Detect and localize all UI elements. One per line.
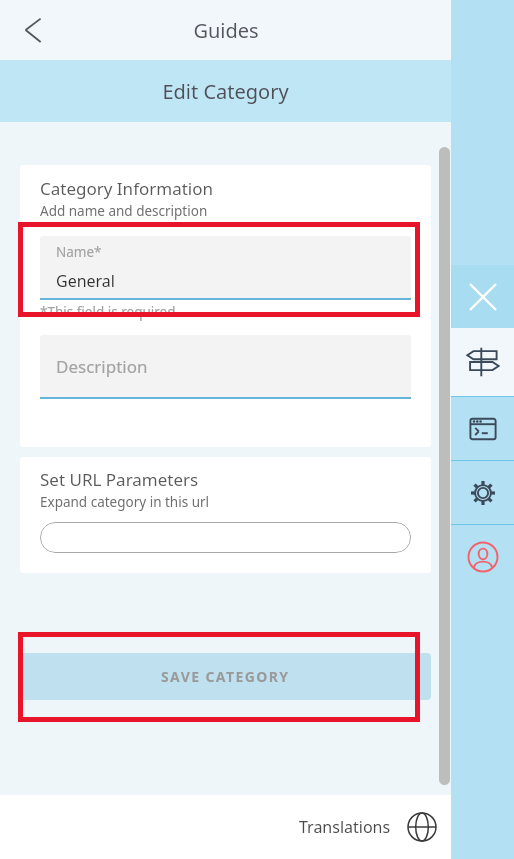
staticText: Translations — [299, 816, 391, 838]
button[interactable]: Description — [40, 335, 411, 399]
staticText: Expand category in this url — [40, 493, 210, 511]
button[interactable]: Translations — [299, 812, 437, 842]
button[interactable]: Guides — [451, 328, 514, 396]
button[interactable]: Account — [451, 525, 514, 588]
button[interactable]: SAVE CATEGORY — [20, 653, 431, 700]
staticText: Edit Category — [162, 78, 289, 105]
staticText: Guides — [193, 17, 259, 44]
button[interactable]: Console — [451, 397, 514, 460]
staticText: *This field is required — [40, 303, 176, 321]
button[interactable] — [40, 522, 411, 553]
button[interactable]: Back — [8, 4, 60, 56]
staticText: Name* — [56, 243, 102, 261]
staticText: SAVE CATEGORY — [161, 667, 290, 686]
button[interactable]: Settings — [451, 461, 514, 524]
staticText: Set URL Parameters — [40, 468, 199, 491]
staticText: Add name and description — [40, 202, 208, 220]
staticText: General — [56, 270, 115, 292]
button[interactable]: Name* — [40, 236, 411, 300]
staticText: Description — [56, 355, 148, 378]
button[interactable]: Close — [451, 265, 514, 328]
staticText: Category Information — [40, 177, 214, 200]
